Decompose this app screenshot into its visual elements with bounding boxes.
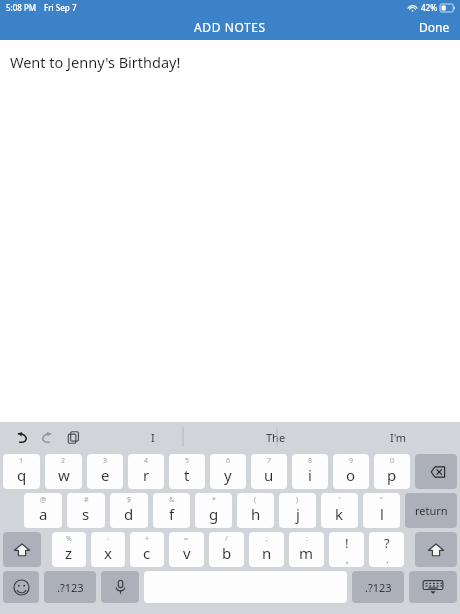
- staticText: i: [308, 465, 312, 485]
- staticText: +: [145, 534, 150, 544]
- button[interactable]: Hide keyboard: [409, 571, 457, 603]
- button[interactable]: 2: [45, 454, 82, 489]
- staticText: m: [299, 543, 314, 563]
- button[interactable]: .?123: [44, 571, 96, 603]
- staticText: !: [345, 534, 349, 552]
- button[interactable]: Emoji: [3, 571, 39, 603]
- staticText: g: [209, 504, 219, 524]
- staticText: %: [66, 534, 72, 544]
- button[interactable]: .?123: [352, 571, 404, 603]
- button[interactable]: Redo: [34, 424, 60, 450]
- staticText: z: [65, 543, 73, 563]
- staticText: I'm: [390, 430, 407, 445]
- button[interactable]: @: [24, 493, 62, 528]
- button[interactable]: 7: [251, 454, 287, 489]
- button[interactable]: Shift: [415, 532, 457, 567]
- staticText: q: [17, 465, 27, 485]
- staticText: The: [266, 430, 286, 445]
- staticText: ): [296, 495, 299, 505]
- staticText: :: [306, 534, 308, 544]
- button[interactable]: 4: [128, 454, 164, 489]
- button[interactable]: return: [405, 493, 457, 528]
- button[interactable]: #: [67, 493, 105, 528]
- staticText: ;: [266, 534, 268, 544]
- staticText: 42%: [421, 2, 437, 13]
- button[interactable]: +: [130, 532, 164, 567]
- staticText: ': [339, 495, 341, 505]
- button[interactable]: 5: [169, 454, 205, 489]
- button[interactable]: ": [363, 493, 400, 528]
- staticText: =: [184, 534, 189, 544]
- staticText: 8: [308, 456, 313, 466]
- button[interactable]: 1: [3, 454, 40, 489]
- staticText: 9: [349, 456, 354, 466]
- staticText: c: [143, 543, 151, 563]
- staticText: 0: [390, 456, 395, 466]
- button[interactable]: Shift: [3, 532, 41, 567]
- staticText: v: [183, 543, 191, 563]
- button[interactable]: %: [52, 532, 86, 567]
- staticText: l: [380, 504, 384, 524]
- staticText: 1: [19, 456, 24, 466]
- button[interactable]: :: [289, 532, 324, 567]
- button[interactable]: 9: [333, 454, 369, 489]
- button[interactable]: !: [329, 532, 364, 567]
- staticText: p: [387, 465, 397, 485]
- staticText: f: [169, 504, 175, 524]
- staticText: Went to Jenny's Birthday!: [10, 52, 181, 72]
- button[interactable]: 8: [292, 454, 328, 489]
- button[interactable]: 0: [374, 454, 410, 489]
- staticText: /: [225, 534, 228, 544]
- button[interactable]: 3: [87, 454, 123, 489]
- staticText: Fri Sep 7: [44, 2, 77, 13]
- button[interactable]: /: [209, 532, 244, 567]
- staticText: ": [380, 495, 383, 505]
- staticText: $: [127, 495, 132, 505]
- staticText: t: [184, 465, 190, 485]
- button[interactable]: ): [279, 493, 316, 528]
- button[interactable]: Backspace: [415, 454, 457, 489]
- button[interactable]: Paste: [60, 424, 86, 450]
- button[interactable]: ;: [249, 532, 284, 567]
- staticText: 5: [185, 456, 190, 466]
- button[interactable]: =: [169, 532, 204, 567]
- staticText: ADD NOTES: [194, 19, 266, 35]
- button[interactable]: -: [91, 532, 125, 567]
- button[interactable]: Undo: [8, 424, 34, 450]
- button[interactable]: Dictate: [101, 571, 139, 603]
- staticText: ,: [346, 553, 349, 565]
- staticText: n: [262, 543, 272, 563]
- staticText: .?123: [365, 580, 392, 595]
- button[interactable]: Done: [409, 15, 460, 39]
- button[interactable]: ': [321, 493, 358, 528]
- button[interactable]: ?: [369, 532, 404, 567]
- staticText: return: [415, 503, 448, 518]
- staticText: 4: [144, 456, 149, 466]
- staticText: j: [296, 504, 300, 524]
- staticText: Done: [419, 19, 450, 35]
- staticText: *: [212, 495, 216, 505]
- button[interactable]: 6: [210, 454, 246, 489]
- staticText: I: [151, 430, 155, 445]
- button[interactable]: *: [195, 493, 232, 528]
- button[interactable]: I: [92, 422, 214, 452]
- staticText: 2: [61, 456, 66, 466]
- staticText: u: [264, 465, 274, 485]
- button[interactable]: The: [214, 422, 337, 452]
- staticText: .?123: [57, 580, 84, 595]
- staticText: a: [39, 504, 48, 524]
- button[interactable]: I'm: [337, 422, 460, 452]
- button[interactable]: $: [110, 493, 148, 528]
- staticText: e: [101, 465, 110, 485]
- staticText: 5:08 PM: [6, 2, 37, 13]
- staticText: s: [82, 504, 90, 524]
- button[interactable]: (: [237, 493, 274, 528]
- staticText: ?: [384, 534, 390, 552]
- staticText: b: [222, 543, 232, 563]
- staticText: h: [251, 504, 261, 524]
- button[interactable]: &: [153, 493, 190, 528]
- staticText: k: [335, 504, 344, 524]
- staticText: &: [169, 495, 175, 505]
- staticText: .: [386, 553, 389, 565]
